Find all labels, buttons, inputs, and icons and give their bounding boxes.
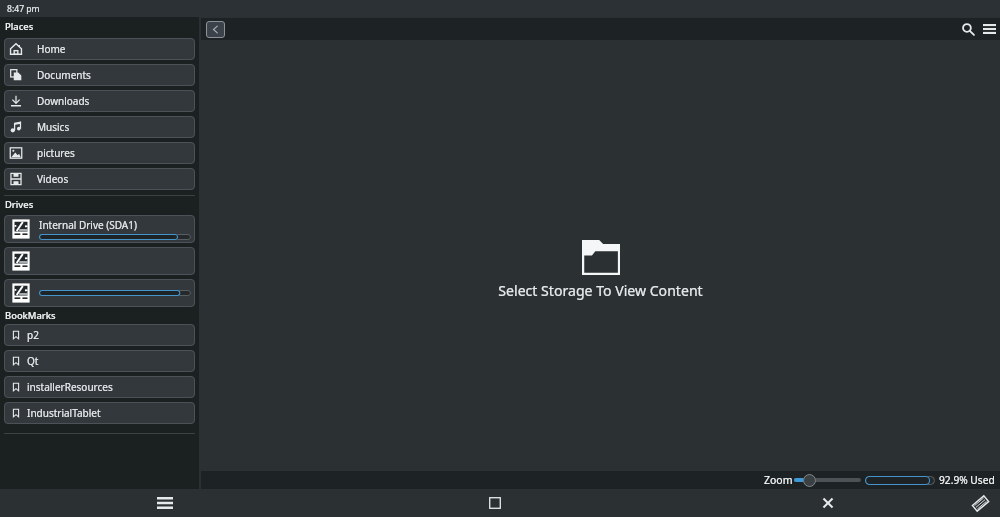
staticText: Places [5,20,34,33]
button[interactable]: installerResources [4,376,195,398]
button[interactable]: Qt [4,350,195,372]
staticText: Qt [27,354,39,368]
button[interactable]: IndustrialTablet [4,402,195,424]
staticText: 92.9% Used [939,473,995,487]
staticText: IndustrialTablet [27,406,101,420]
staticText: BookMarks [5,309,56,322]
staticText: Downloads [37,94,90,108]
button[interactable] [4,279,195,307]
button[interactable]: Internal Drive (SDA1) [4,215,195,243]
button[interactable]: Musics [4,116,195,138]
staticText: 8:47 pm [7,3,40,15]
staticText: pictures [37,146,75,160]
button[interactable]: Home [460,489,530,517]
staticText: Videos [37,172,69,186]
button[interactable]: Back [793,489,863,517]
staticText: Zoom [764,473,793,487]
button[interactable]: Switch keyboard [952,489,1000,517]
button[interactable]: Menu [979,19,999,39]
staticText: installerResources [27,380,113,394]
button[interactable]: p2 [4,324,195,346]
button[interactable] [4,247,195,275]
button[interactable]: Documents [4,64,195,86]
staticText: p2 [27,328,39,342]
staticText: Select Storage To View Content [498,281,703,300]
button[interactable]: Recent apps [130,489,200,517]
staticText: Home [37,42,66,56]
button[interactable]: Videos [4,168,195,190]
button[interactable]: pictures [4,142,195,164]
button[interactable]: Back [206,21,225,38]
staticText: Internal Drive (SDA1) [39,218,137,232]
button[interactable]: Home [4,38,195,60]
staticText: Drives [5,198,34,211]
button[interactable]: Zoom slider [794,472,861,488]
button[interactable]: Search [958,19,978,39]
staticText: Musics [37,120,70,134]
staticText: Documents [37,68,91,82]
button[interactable]: Downloads [4,90,195,112]
